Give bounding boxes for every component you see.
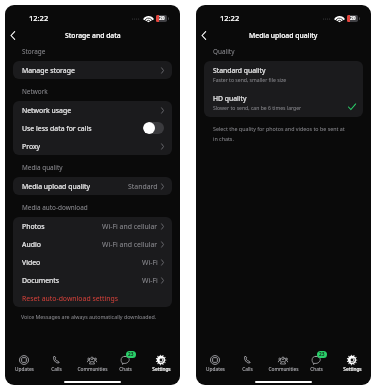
staticText: Manage storage bbox=[22, 66, 75, 75]
button[interactable]: Calls bbox=[230, 350, 264, 385]
staticText: Use less data for calls bbox=[22, 124, 92, 133]
button[interactable]: Media upload quality bbox=[13, 177, 172, 195]
staticText: Wi-Fi bbox=[142, 258, 158, 267]
button[interactable]: Use less data for calls bbox=[13, 119, 172, 137]
staticText: Documents bbox=[22, 276, 60, 285]
button[interactable]: Back bbox=[199, 31, 208, 40]
button[interactable]: Settings bbox=[144, 350, 178, 385]
button[interactable]: Audio bbox=[13, 235, 172, 253]
staticText: 23 bbox=[319, 351, 325, 358]
staticText: Faster to send, smaller file size bbox=[213, 77, 287, 84]
staticText: 20 bbox=[350, 15, 356, 22]
staticText: Settings bbox=[343, 366, 362, 373]
button[interactable]: Proxy bbox=[13, 137, 172, 155]
button[interactable]: HD quality bbox=[204, 89, 363, 117]
staticText: Wi-Fi and cellular bbox=[102, 222, 158, 231]
staticText: Communities bbox=[268, 366, 299, 373]
staticText: Wi-Fi bbox=[142, 276, 158, 285]
staticText: Media quality bbox=[22, 163, 63, 172]
staticText: Wi-Fi and cellular bbox=[102, 240, 158, 249]
button[interactable]: Video bbox=[13, 253, 172, 271]
staticText: 12:22 bbox=[220, 13, 240, 23]
button[interactable]: Calls bbox=[39, 350, 73, 385]
button[interactable]: 23 bbox=[299, 350, 333, 385]
staticText: Storage bbox=[22, 47, 46, 56]
staticText: Proxy bbox=[22, 142, 41, 151]
button[interactable]: 23 bbox=[108, 350, 142, 385]
staticText: 23 bbox=[128, 351, 134, 358]
staticText: Updates bbox=[206, 366, 225, 373]
staticText: Updates bbox=[15, 366, 34, 373]
staticText: Voice Messages are always automatically … bbox=[21, 313, 157, 320]
staticText: Reset auto-download settings bbox=[22, 294, 119, 303]
button[interactable]: Manage storage bbox=[13, 61, 172, 79]
button[interactable]: Communities bbox=[266, 350, 300, 385]
staticText: Standard quality bbox=[213, 66, 266, 75]
staticText: Communities bbox=[77, 366, 108, 373]
button[interactable]: Photos bbox=[13, 217, 172, 235]
staticText: Photos bbox=[22, 222, 45, 231]
staticText: Video bbox=[22, 258, 41, 267]
staticText: 20 bbox=[159, 15, 165, 22]
staticText: 12:22 bbox=[29, 13, 49, 23]
staticText: Storage and data bbox=[65, 31, 121, 40]
staticText: Media upload quality bbox=[249, 31, 318, 40]
button[interactable]: Updates bbox=[7, 350, 41, 385]
staticText: Standard bbox=[128, 182, 158, 191]
staticText: Calls bbox=[242, 366, 253, 373]
button[interactable]: Communities bbox=[75, 350, 109, 385]
staticText: Settings bbox=[152, 366, 171, 373]
button[interactable]: Updates bbox=[198, 350, 232, 385]
staticText: Slower to send, can be 6 times larger bbox=[213, 105, 302, 112]
button[interactable]: Settings bbox=[335, 350, 369, 385]
staticText: Audio bbox=[22, 240, 41, 249]
staticText: HD quality bbox=[213, 94, 247, 103]
staticText: Media upload quality bbox=[22, 182, 91, 191]
staticText: Calls bbox=[51, 366, 62, 373]
staticText: Select the quality for photos and videos… bbox=[213, 125, 345, 143]
button[interactable]: Reset auto-download settings bbox=[13, 289, 172, 307]
staticText: Chats bbox=[310, 366, 323, 373]
button[interactable]: Back bbox=[8, 31, 17, 40]
staticText: Media auto-download bbox=[22, 203, 88, 212]
staticText: Network usage bbox=[22, 106, 72, 115]
button[interactable]: Use less data for calls toggle bbox=[143, 122, 164, 134]
other: Selected bbox=[348, 103, 356, 111]
staticText: Chats bbox=[119, 366, 132, 373]
staticText: Quality bbox=[213, 47, 235, 56]
button[interactable]: Documents bbox=[13, 271, 172, 289]
staticText: Network bbox=[22, 87, 48, 96]
button[interactable]: Network usage bbox=[13, 101, 172, 119]
button[interactable]: Standard quality bbox=[204, 61, 363, 89]
